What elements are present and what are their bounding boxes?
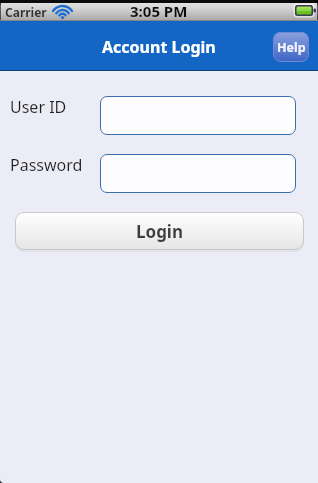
staticText: Account Login [102,36,216,58]
staticText: 3:05 PM [130,1,188,21]
button[interactable]: Help [273,32,309,62]
staticText: Help [277,39,306,56]
staticText: Password [10,154,83,176]
staticText: Carrier [5,4,47,20]
staticText: Login [136,220,184,243]
staticText: User ID [10,96,67,118]
button[interactable]: Login [15,212,304,250]
button[interactable] [100,96,296,135]
button[interactable] [100,154,296,193]
